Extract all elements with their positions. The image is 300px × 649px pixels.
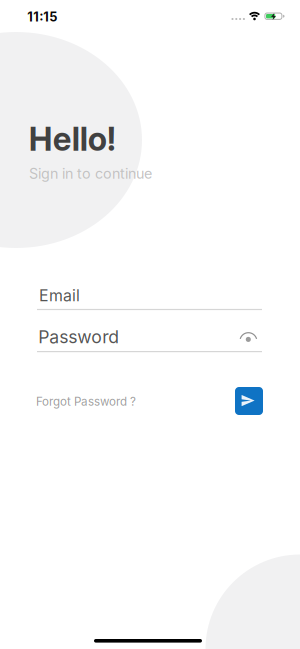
staticText: Forgot Password ? [36, 394, 136, 408]
staticText: Hello! [29, 119, 116, 159]
staticText: Email [39, 286, 80, 305]
button[interactable] [235, 387, 263, 415]
staticText: 11:15 [27, 9, 57, 25]
staticText: Sign in to continue [29, 165, 152, 182]
button[interactable] [239, 330, 257, 344]
staticText: Password [38, 326, 119, 347]
button[interactable]: Forgot Password ? [36, 394, 136, 408]
